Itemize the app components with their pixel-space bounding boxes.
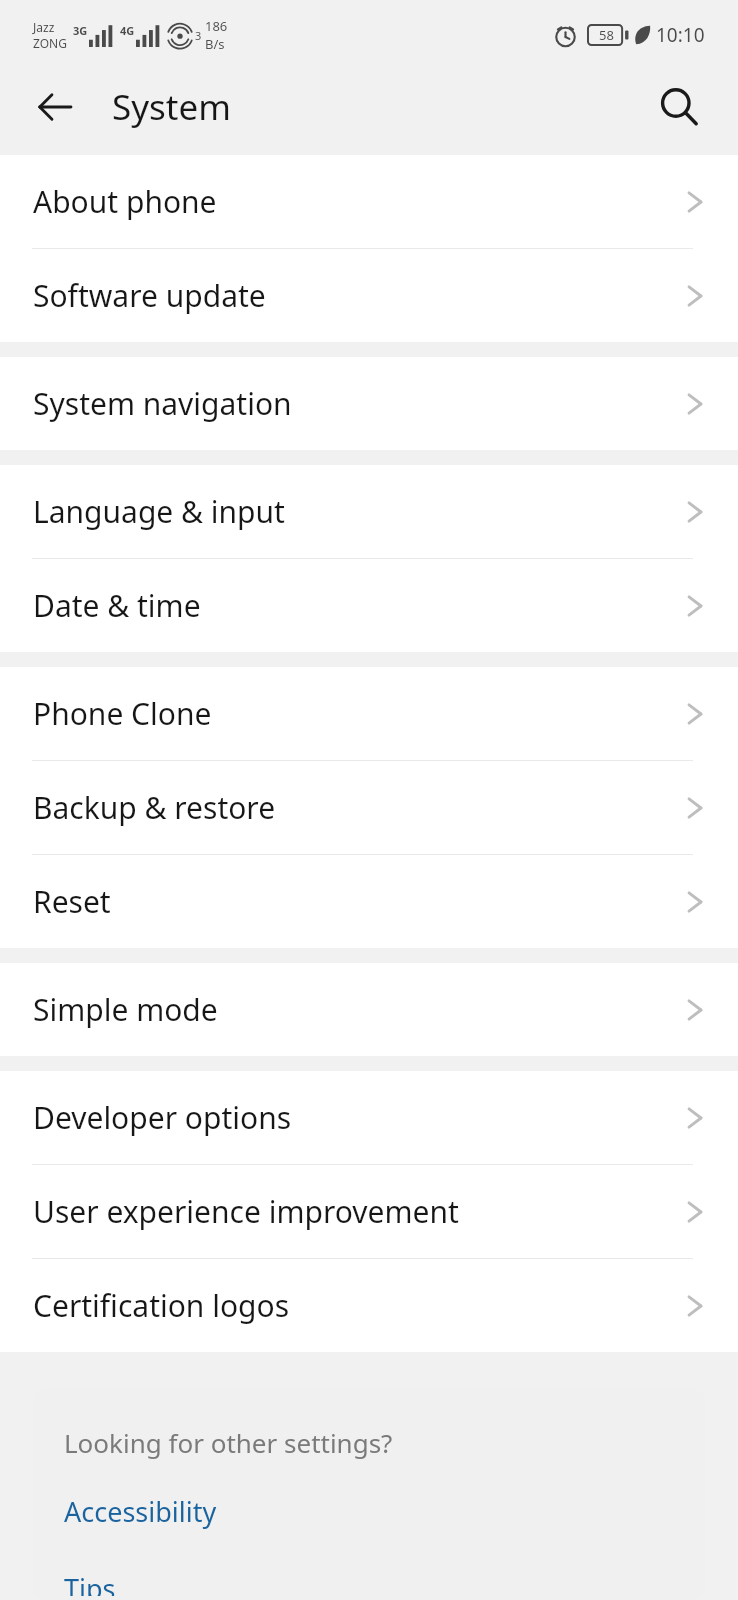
button[interactable]: Tips (33, 1566, 705, 1600)
staticText: 3 (195, 28, 202, 43)
staticText: 10:10 (656, 22, 705, 48)
staticText: Date & time (33, 585, 680, 626)
button[interactable]: Reset (0, 855, 738, 948)
button[interactable]: Backup & restore (0, 761, 738, 854)
staticText: B/s (205, 35, 225, 53)
button[interactable]: Phone Clone (0, 667, 738, 760)
staticText: Backup & restore (33, 787, 680, 828)
staticText: System (112, 83, 231, 131)
button[interactable]: Simple mode (0, 963, 738, 1056)
staticText: 58 (599, 26, 614, 44)
staticText: Tips (64, 1570, 116, 1596)
button[interactable]: User experience improvement (0, 1165, 738, 1258)
button[interactable]: Developer options (0, 1071, 738, 1164)
button[interactable]: Date & time (0, 559, 738, 652)
staticText: Certification logos (33, 1285, 680, 1326)
staticText: Software update (33, 275, 680, 316)
button[interactable]: Certification logos (0, 1259, 738, 1352)
staticText: Language & input (33, 491, 680, 532)
button[interactable]: Back (21, 73, 89, 141)
staticText: 3G (73, 23, 88, 38)
staticText: 186 (205, 17, 228, 35)
button[interactable]: System navigation (0, 357, 738, 450)
staticText: Looking for other settings? (64, 1425, 393, 1460)
staticText: Developer options (33, 1097, 680, 1138)
staticText: User experience improvement (33, 1191, 680, 1232)
staticText: Reset (33, 881, 680, 922)
button[interactable]: Accessibility (33, 1489, 705, 1534)
staticText: Jazz (33, 19, 55, 35)
button[interactable]: Software update (0, 249, 738, 342)
staticText: ZONG (33, 35, 67, 51)
button[interactable]: Search (647, 75, 711, 139)
staticText: Accessibility (64, 1493, 217, 1530)
staticText: Simple mode (33, 989, 680, 1030)
staticText: Phone Clone (33, 693, 680, 734)
button[interactable]: Language & input (0, 465, 738, 558)
staticText: System navigation (33, 383, 680, 424)
staticText: 4G (120, 23, 135, 38)
staticText: About phone (33, 181, 680, 222)
button[interactable]: About phone (0, 155, 738, 248)
